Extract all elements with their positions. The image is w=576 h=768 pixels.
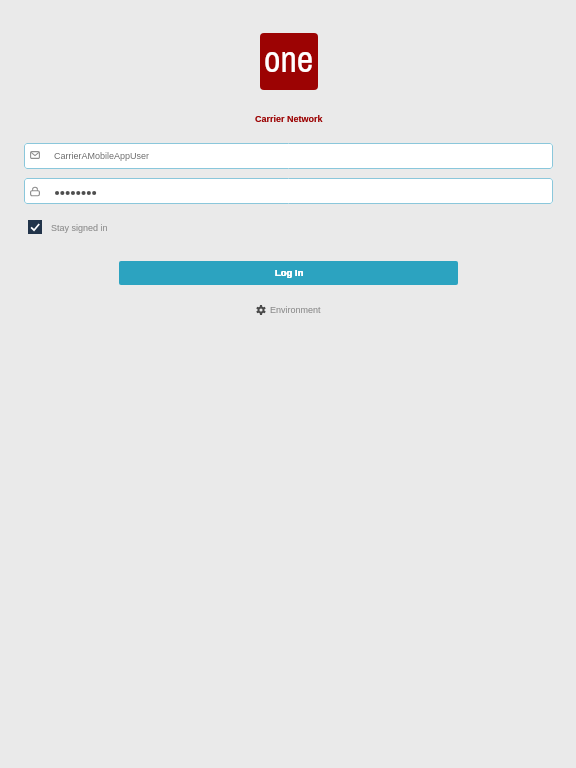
button[interactable]: one logo — [260, 33, 318, 90]
staticText: CarrierAMobileAppUser — [54, 151, 150, 161]
button[interactable]: Password — [24, 178, 553, 204]
staticText: Log In — [275, 267, 304, 278]
button[interactable]: Log In — [119, 261, 458, 285]
staticText: Environment — [270, 305, 321, 315]
other: Password — [30, 186, 40, 196]
staticText: Carrier Network — [255, 114, 323, 124]
staticText: Carrier Network — [255, 114, 323, 124]
staticText: one — [264, 35, 314, 83]
button[interactable]: Stay signed in — [28, 220, 108, 234]
button[interactable]: Environment settings — [256, 305, 321, 315]
other: Environment settings — [256, 305, 266, 315]
staticText: Log In — [275, 267, 304, 278]
staticText: Stay signed in — [51, 223, 108, 233]
other: Email — [30, 151, 40, 159]
button[interactable]: Email — [24, 143, 553, 169]
